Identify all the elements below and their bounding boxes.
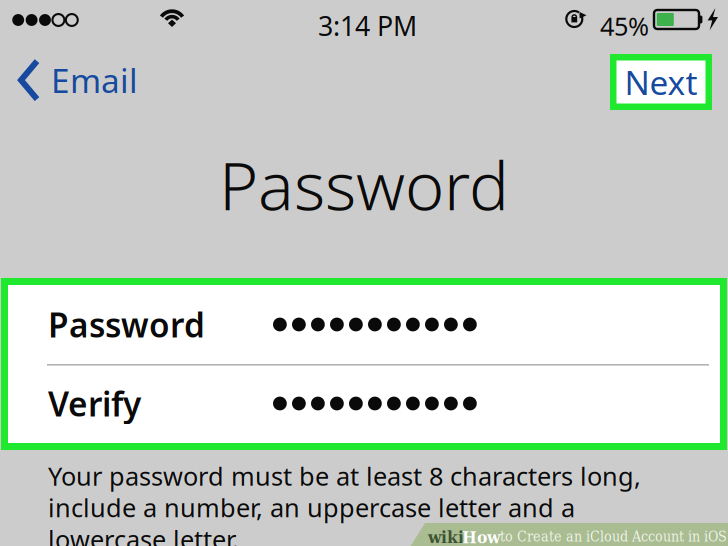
staticText: 45% (600, 9, 649, 43)
button[interactable]: Next (610, 54, 712, 110)
button[interactable]: Email (17, 52, 138, 108)
staticText: Password (48, 302, 205, 347)
staticText: Password (219, 140, 509, 228)
staticText: Next (624, 60, 697, 104)
staticText: Verify (48, 381, 141, 426)
staticText: 3:14 PM (318, 8, 417, 43)
staticText: wiki (428, 527, 464, 546)
staticText: to Create an iCloud Account in iOS (500, 528, 727, 545)
staticText: Your password must be at least 8 charact… (48, 459, 641, 546)
staticText: How (462, 527, 500, 546)
staticText: Email (51, 58, 138, 102)
